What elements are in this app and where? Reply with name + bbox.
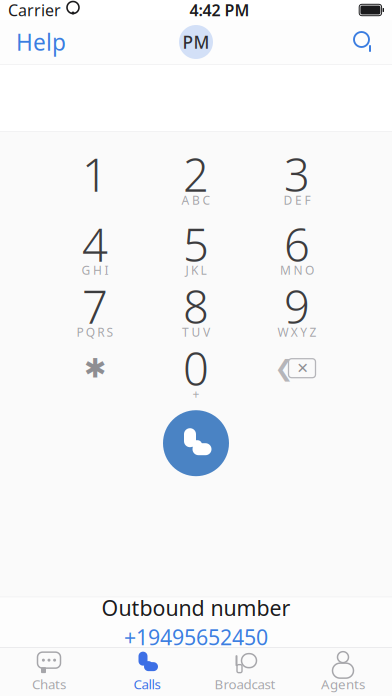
button[interactable]: Broadcast	[196, 648, 294, 696]
staticText: L	[200, 262, 206, 278]
staticText: V	[203, 324, 210, 340]
button[interactable]: Chats	[0, 648, 98, 696]
staticText: Y	[300, 324, 307, 340]
staticText: J	[186, 262, 189, 278]
staticText: I	[104, 262, 108, 278]
staticText: W	[277, 324, 288, 340]
staticText: F	[304, 192, 310, 208]
staticText: ✱	[84, 353, 106, 383]
staticText: 6	[284, 214, 310, 274]
button[interactable]: Call	[163, 410, 229, 476]
staticText: +	[192, 386, 199, 402]
button[interactable]: Calls	[98, 648, 196, 696]
staticText: 1	[82, 144, 108, 204]
staticText: G	[82, 262, 91, 278]
staticText: Chats	[32, 675, 66, 693]
staticText: M	[280, 262, 291, 278]
staticText: T	[182, 324, 189, 340]
staticText: 0	[183, 338, 209, 398]
button[interactable]: Star	[44, 343, 145, 405]
button[interactable]: 7	[44, 281, 145, 343]
staticText: 4:42 PM	[190, 0, 250, 21]
button[interactable]: 0	[145, 343, 246, 405]
staticText: ✕	[296, 360, 308, 376]
staticText: 4	[82, 214, 108, 274]
staticText: 3	[284, 144, 310, 204]
staticText: X	[291, 324, 298, 340]
staticText: 5	[183, 214, 209, 274]
staticText: Broadcast	[214, 675, 275, 693]
button[interactable]: 2	[145, 149, 246, 211]
staticText: PM	[182, 30, 209, 53]
button[interactable]: 8	[145, 281, 246, 343]
staticText: 8	[183, 276, 209, 336]
button[interactable]: Help	[0, 20, 82, 64]
staticText: Help	[16, 27, 66, 57]
button[interactable]: Search	[336, 20, 392, 64]
staticText: 9	[284, 276, 310, 336]
staticText: +19495652450	[124, 623, 268, 651]
button[interactable]: 5	[145, 219, 246, 281]
staticText: O	[305, 262, 314, 278]
staticText: 7	[82, 276, 108, 336]
staticText: N	[293, 262, 302, 278]
staticText: A	[182, 192, 190, 208]
staticText: S	[107, 324, 114, 340]
button[interactable]: Profile P M	[179, 25, 213, 59]
button[interactable]: 9	[246, 281, 347, 343]
button[interactable]: Outbound number	[0, 597, 392, 647]
staticText: D	[284, 192, 293, 208]
staticText: P	[76, 324, 83, 340]
staticText: E	[295, 192, 302, 208]
staticText: Outbound number	[101, 594, 290, 622]
staticText: R	[97, 324, 104, 340]
staticText: C	[202, 192, 210, 208]
staticText: B	[192, 192, 200, 208]
staticText: Carrier	[8, 0, 61, 21]
button[interactable]: 6	[246, 219, 347, 281]
button[interactable]: 1	[44, 149, 145, 211]
staticText: H	[93, 262, 102, 278]
staticText: Q	[86, 324, 95, 340]
button[interactable]: 4	[44, 219, 145, 281]
staticText: 2	[183, 144, 209, 204]
staticText: K	[191, 262, 198, 278]
staticText: Z	[310, 324, 317, 340]
staticText: ❮	[274, 355, 293, 381]
staticText: Calls	[133, 675, 160, 693]
button[interactable]: Delete	[246, 343, 347, 405]
button[interactable]: 3	[246, 149, 347, 211]
button[interactable]: Agents	[294, 648, 392, 696]
staticText: Agents	[321, 675, 365, 693]
staticText: U	[191, 324, 200, 340]
